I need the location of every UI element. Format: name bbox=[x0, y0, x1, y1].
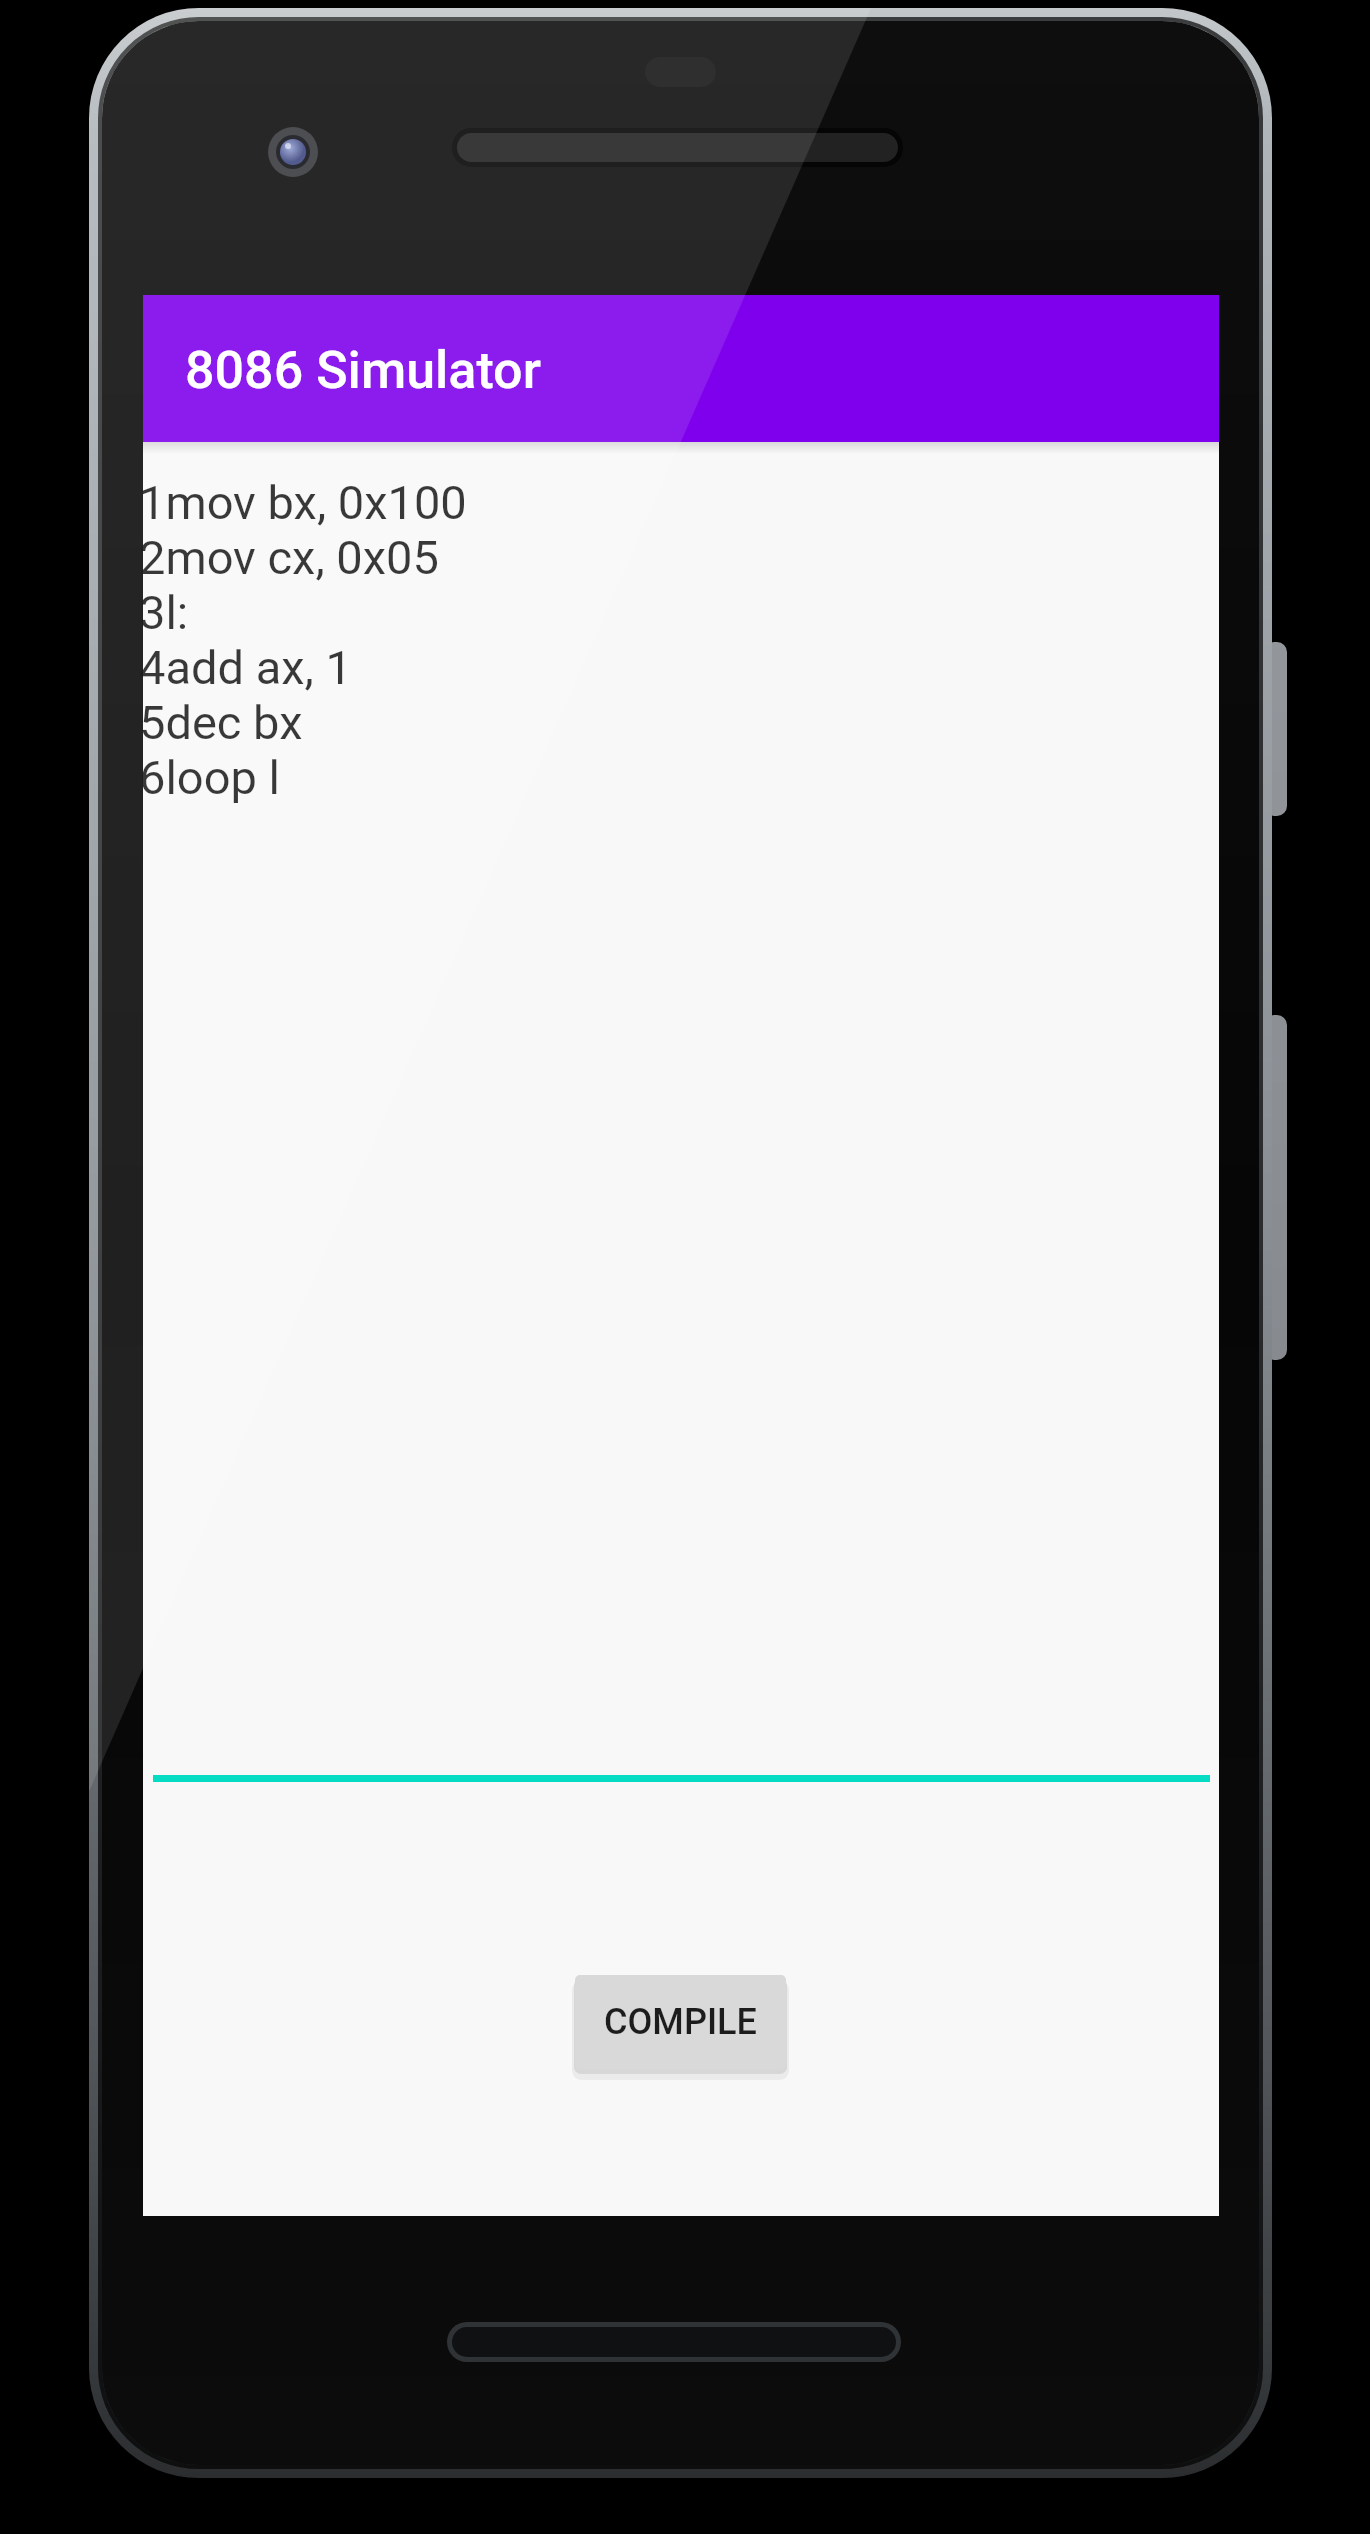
staticText: 8086 Simulator bbox=[185, 340, 541, 401]
staticText: COMPILE bbox=[604, 2001, 757, 2043]
button[interactable]: 1mov bx, 0x100 2mov cx, 0x05 3l: 4add ax… bbox=[139, 475, 1039, 1795]
staticText: 1mov bx, 0x100 2mov cx, 0x05 3l: 4add ax… bbox=[139, 475, 467, 805]
button[interactable]: COMPILE bbox=[575, 1975, 786, 2069]
